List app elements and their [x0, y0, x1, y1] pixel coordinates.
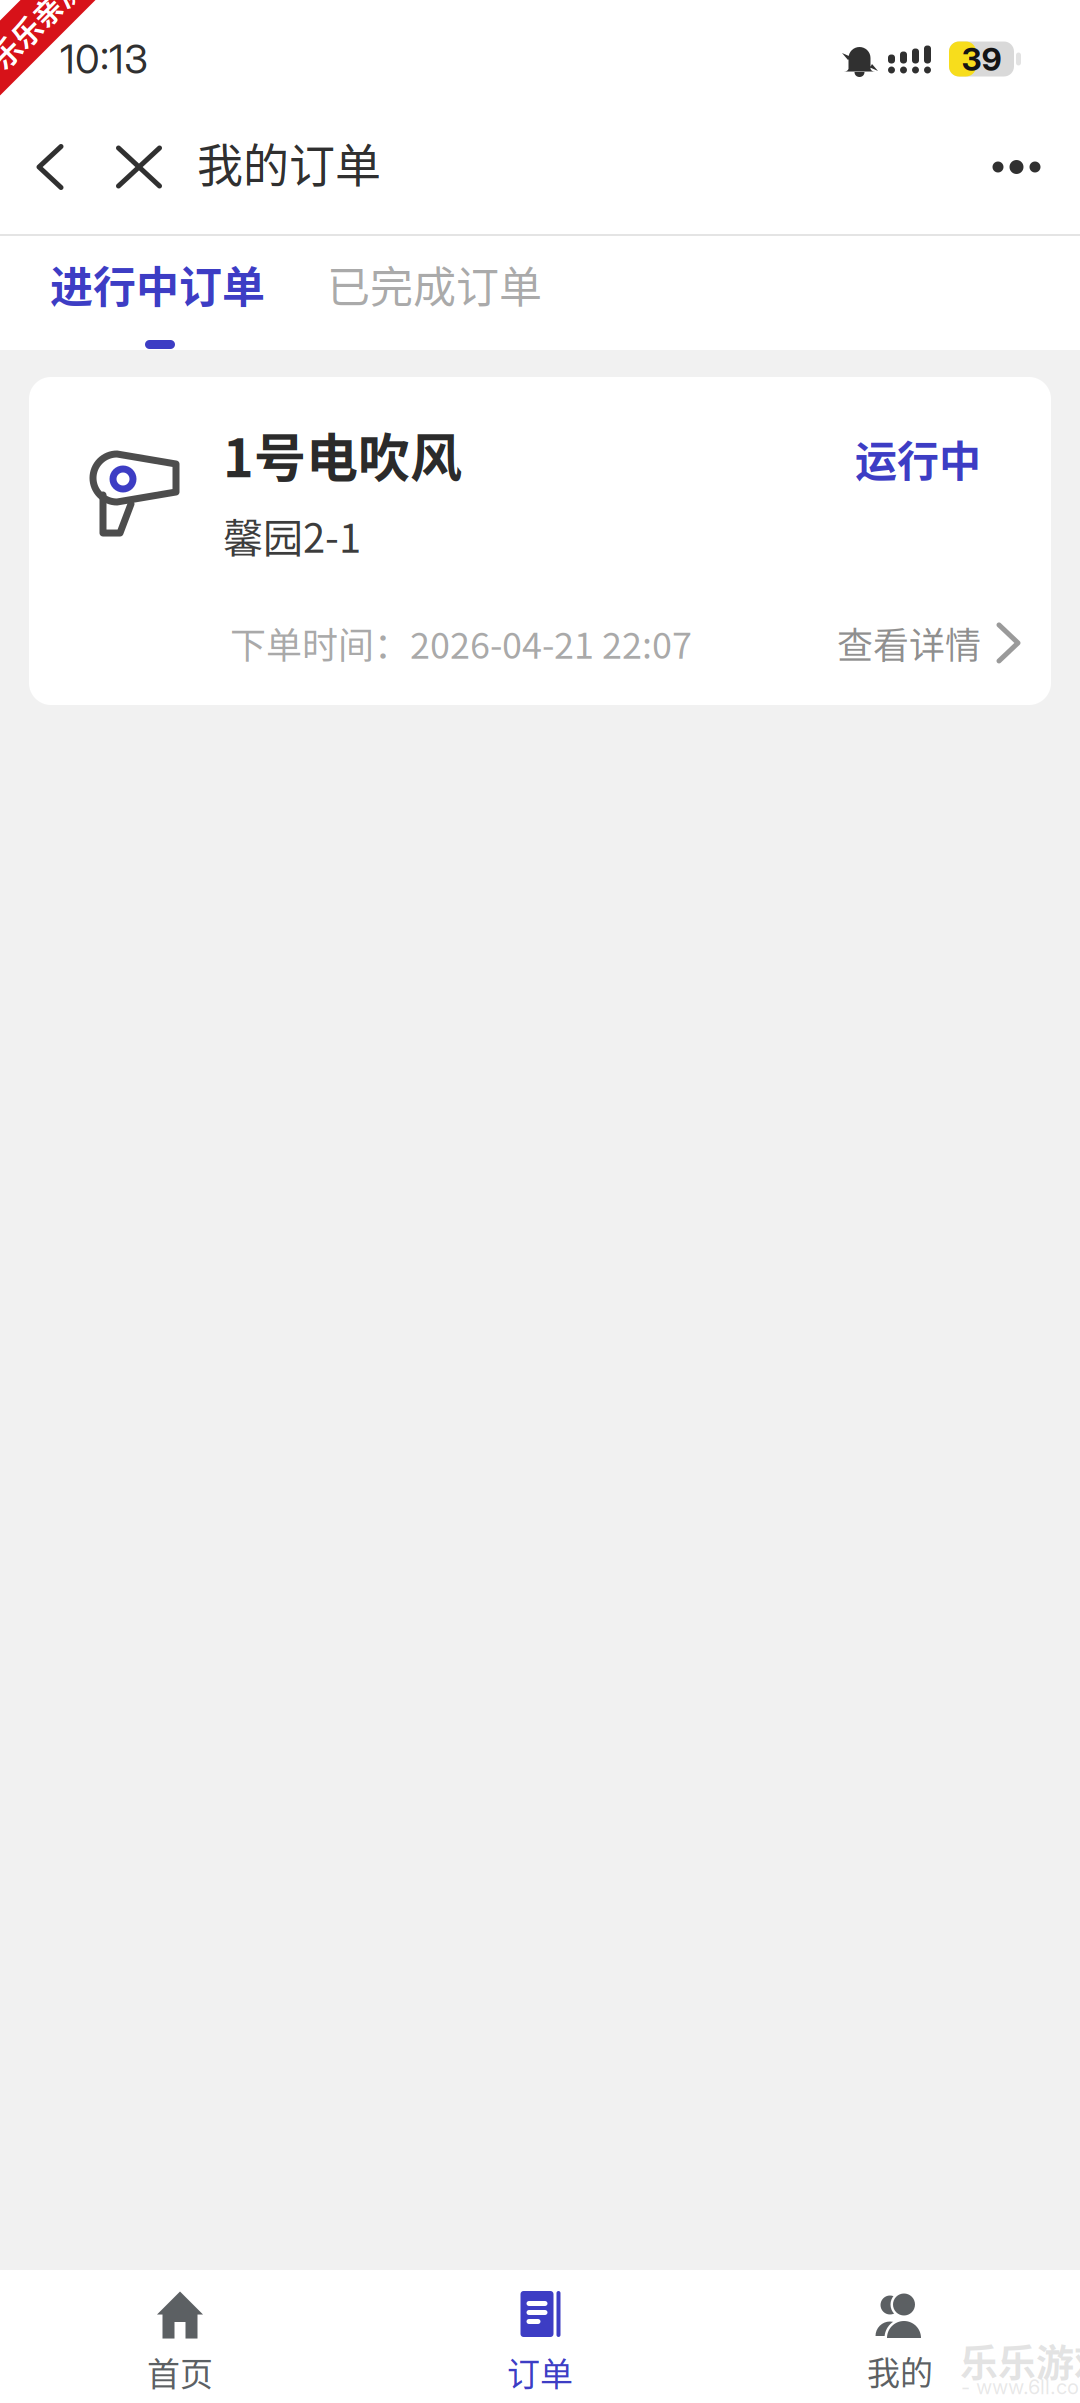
- staticText: 乐乐游戏: [960, 2332, 1080, 2387]
- staticText: 已完成订单: [327, 253, 542, 315]
- staticText: 馨园2-1: [223, 506, 361, 564]
- staticText: 查看详情: [837, 617, 981, 669]
- staticText: 1号电吹风: [223, 417, 462, 492]
- button[interactable]: Back: [6, 118, 94, 216]
- button[interactable]: 我的: [720, 2270, 1080, 2403]
- button[interactable]: 1号电吹风: [29, 377, 1051, 705]
- staticText: 下单时间：2026-04-21 22:07: [230, 617, 692, 669]
- button[interactable]: 首页: [0, 2270, 360, 2403]
- staticText: 乐乐亲测: [0, 8, 98, 50]
- staticText: 39: [961, 40, 1001, 78]
- staticText: 我的: [867, 2347, 933, 2395]
- button[interactable]: More: [965, 118, 1068, 216]
- staticText: - www.6ll.com -: [961, 2375, 1080, 2399]
- button[interactable]: 进行中订单: [50, 236, 265, 350]
- staticText: 运行中: [855, 428, 981, 489]
- button[interactable]: 订单: [360, 2270, 720, 2403]
- staticText: 我的订单: [197, 129, 381, 195]
- staticText: 10:13: [60, 35, 148, 83]
- staticText: 进行中订单: [50, 253, 265, 315]
- staticText: 首页: [147, 2348, 213, 2396]
- button[interactable]: 已完成订单: [327, 236, 542, 350]
- button[interactable]: Close: [94, 118, 184, 216]
- staticText: 订单: [507, 2348, 573, 2396]
